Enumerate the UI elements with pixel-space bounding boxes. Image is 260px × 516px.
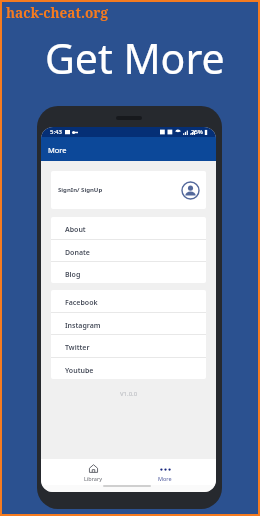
button[interactable]: Instagram: [51, 313, 206, 335]
staticText: More: [48, 145, 67, 155]
staticText: More: [158, 475, 172, 482]
staticText: Blog: [65, 270, 81, 280]
button[interactable]: About: [51, 217, 206, 240]
button[interactable]: Facebook: [51, 290, 206, 313]
staticText: Get More: [45, 30, 225, 86]
other: Account: [181, 181, 200, 200]
staticText: 25%: [191, 128, 203, 136]
staticText: V1.0.0: [120, 390, 138, 398]
button[interactable]: Twitter: [51, 335, 206, 358]
other: Library: [89, 464, 98, 473]
staticText: hack-cheat.org: [6, 3, 108, 22]
staticText: Donate: [65, 248, 90, 258]
button[interactable]: Blog: [51, 262, 206, 283]
staticText: Library: [84, 475, 103, 482]
staticText: SignIn/ SignUp: [58, 186, 103, 194]
staticText: Youtube: [65, 366, 94, 376]
other: More: [160, 464, 171, 473]
staticText: About: [65, 225, 86, 235]
button[interactable]: SignIn/ SignUp: [51, 171, 206, 209]
button[interactable]: More: [147, 459, 183, 485]
button[interactable]: Library: [75, 459, 111, 485]
staticText: 5:43: [50, 128, 62, 136]
staticText: Facebook: [65, 298, 98, 308]
button[interactable]: Donate: [51, 240, 206, 262]
button[interactable]: Youtube: [51, 358, 206, 379]
staticText: Twitter: [65, 343, 90, 353]
staticText: Instagram: [65, 321, 101, 331]
